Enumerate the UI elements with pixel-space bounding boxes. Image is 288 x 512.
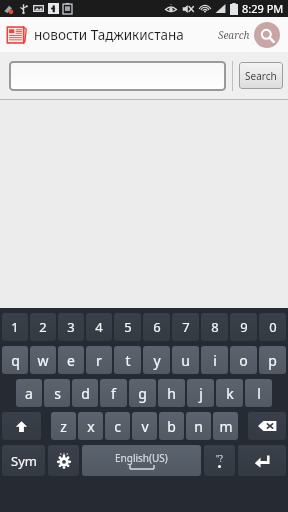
staticText: w xyxy=(37,351,49,370)
button[interactable]: t xyxy=(114,346,141,374)
button[interactable]: c xyxy=(105,412,130,440)
staticText: q xyxy=(11,351,20,370)
button[interactable]: n xyxy=(186,412,211,440)
button[interactable]: b xyxy=(159,412,184,440)
button[interactable]: v xyxy=(132,412,157,440)
button[interactable]: English(US) xyxy=(82,445,201,476)
staticText: "? xyxy=(216,453,223,464)
button[interactable]: 8 xyxy=(201,313,228,341)
button[interactable]: 9 xyxy=(230,313,257,341)
button[interactable]: y xyxy=(143,346,170,374)
staticText: 8:29 PM xyxy=(242,1,284,16)
button[interactable]: 1 xyxy=(2,313,28,341)
staticText: Search xyxy=(245,69,277,83)
staticText: i xyxy=(213,351,217,370)
button[interactable]: 6 xyxy=(143,313,170,341)
staticText: u xyxy=(181,351,190,370)
staticText: a xyxy=(25,384,33,403)
button[interactable]: 4 xyxy=(86,313,112,341)
staticText: s xyxy=(54,384,61,403)
button[interactable]: Backspace xyxy=(248,412,286,440)
staticText: h xyxy=(167,384,176,403)
staticText: Search xyxy=(218,28,250,42)
staticText: r xyxy=(96,351,102,370)
staticText: o xyxy=(239,351,248,370)
button[interactable]: 3 xyxy=(58,313,84,341)
staticText: 2 xyxy=(39,318,47,336)
button[interactable]: i xyxy=(201,346,228,374)
staticText: b xyxy=(167,417,176,436)
staticText: 7 xyxy=(182,318,190,336)
staticText: n xyxy=(194,417,203,436)
button[interactable]: Settings xyxy=(48,445,79,476)
button[interactable]: w xyxy=(30,346,56,374)
button[interactable]: a xyxy=(16,379,42,407)
staticText: 8 xyxy=(211,318,219,336)
staticText: k xyxy=(226,384,234,403)
staticText: p xyxy=(268,351,277,370)
staticText: 5 xyxy=(124,318,132,336)
other: Search xyxy=(254,22,280,48)
button[interactable]: l xyxy=(245,379,272,407)
button[interactable]: d xyxy=(72,379,98,407)
button[interactable]: Search xyxy=(214,22,288,48)
staticText: e xyxy=(67,351,75,370)
button[interactable]: r xyxy=(86,346,112,374)
button[interactable]: e xyxy=(58,346,84,374)
staticText: 1 xyxy=(11,318,19,336)
button[interactable]: m xyxy=(213,412,238,440)
staticText: Sym xyxy=(11,452,37,470)
staticText: j xyxy=(199,384,203,403)
button[interactable]: k xyxy=(216,379,243,407)
button[interactable]: p xyxy=(259,346,286,374)
staticText: 9 xyxy=(240,318,248,336)
button[interactable]: o xyxy=(230,346,257,374)
staticText: 4 xyxy=(95,318,103,336)
button[interactable]: Sym xyxy=(2,445,45,476)
staticText: t xyxy=(125,351,131,370)
staticText: 3 xyxy=(67,318,75,336)
staticText: 0 xyxy=(269,318,277,336)
button[interactable]: Search xyxy=(239,62,283,89)
button[interactable] xyxy=(9,61,226,91)
button[interactable]: g xyxy=(129,379,156,407)
staticText: English(US) xyxy=(115,451,168,465)
button[interactable]: Punctuation xyxy=(204,445,235,476)
button[interactable]: 2 xyxy=(30,313,56,341)
button[interactable]: h xyxy=(158,379,185,407)
button[interactable]: 0 xyxy=(259,313,286,341)
staticText: f xyxy=(111,384,116,403)
staticText: v xyxy=(141,417,149,436)
staticText: l xyxy=(257,384,261,403)
button[interactable]: Enter xyxy=(238,445,286,476)
button[interactable]: 5 xyxy=(114,313,141,341)
button[interactable]: z xyxy=(51,412,76,440)
staticText: m xyxy=(219,417,233,436)
button[interactable]: u xyxy=(172,346,199,374)
staticText: x xyxy=(87,417,95,436)
staticText: новости Таджикистана xyxy=(34,26,184,44)
staticText: g xyxy=(138,384,147,403)
staticText: d xyxy=(81,384,90,403)
button[interactable]: s xyxy=(44,379,70,407)
button[interactable]: j xyxy=(187,379,214,407)
button[interactable]: f xyxy=(100,379,127,407)
staticText: 6 xyxy=(153,318,161,336)
button[interactable]: x xyxy=(78,412,103,440)
button[interactable]: Shift xyxy=(2,412,41,440)
staticText: z xyxy=(60,417,67,436)
staticText: c xyxy=(114,417,121,436)
button[interactable]: 7 xyxy=(172,313,199,341)
staticText: y xyxy=(153,351,161,370)
button[interactable]: q xyxy=(2,346,28,374)
